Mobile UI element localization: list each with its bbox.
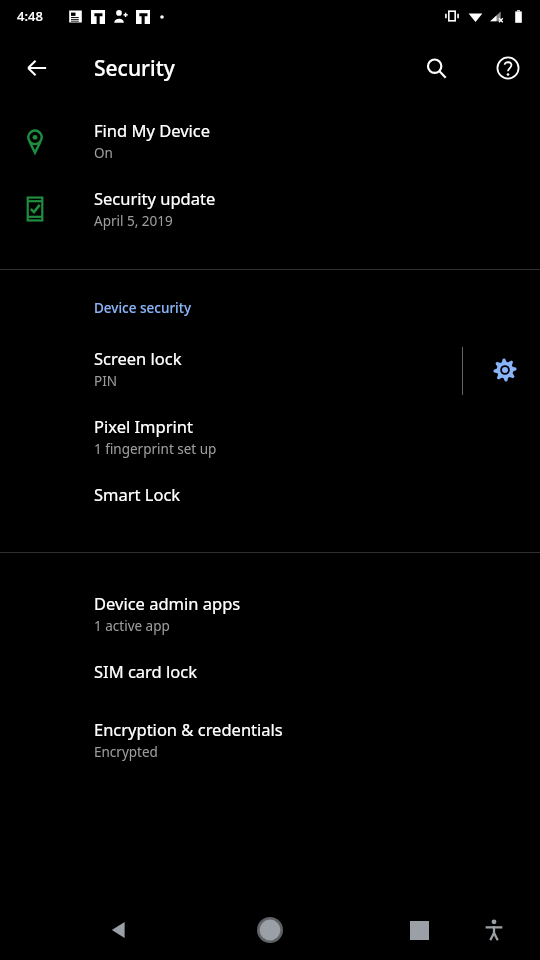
staticText: Smart Lock	[94, 483, 181, 505]
button[interactable]: Find My Device	[0, 116, 540, 184]
button[interactable]: Screen lock settings	[470, 344, 540, 400]
staticText: 1 fingerprint set up	[94, 440, 217, 458]
staticText: SIM card lock	[94, 660, 197, 682]
button[interactable]: Smart Lock	[0, 480, 540, 538]
button[interactable]: Help	[484, 44, 532, 92]
staticText: 4:48	[17, 7, 43, 25]
staticText: Find My Device	[94, 119, 211, 141]
button[interactable]: Accessibility	[470, 906, 518, 954]
button[interactable]: Screen lock	[0, 344, 454, 412]
staticText: On	[94, 144, 113, 162]
button[interactable]: Search	[412, 44, 460, 92]
button[interactable]: Back	[94, 906, 142, 954]
staticText: Device security	[94, 299, 192, 317]
staticText: 1 active app	[94, 617, 170, 635]
button[interactable]: Encryption & credentials	[0, 715, 540, 783]
button[interactable]: Pixel Imprint	[0, 412, 540, 480]
staticText: Encrypted	[94, 743, 158, 761]
button[interactable]: Home	[246, 906, 294, 954]
button[interactable]: Recent apps	[395, 906, 443, 954]
staticText: Device admin apps	[94, 592, 241, 614]
staticText: PIN	[94, 372, 118, 390]
staticText: April 5, 2019	[94, 212, 173, 230]
staticText: Encryption & credentials	[94, 718, 283, 740]
staticText: Pixel Imprint	[94, 415, 193, 437]
button[interactable]: SIM card lock	[0, 657, 540, 715]
button[interactable]: Security update	[0, 184, 540, 252]
button[interactable]: Back	[13, 44, 61, 92]
button[interactable]: Device admin apps	[0, 589, 540, 657]
staticText: Security update	[94, 187, 216, 209]
staticText: Screen lock	[94, 347, 182, 369]
staticText: Security	[94, 54, 175, 83]
